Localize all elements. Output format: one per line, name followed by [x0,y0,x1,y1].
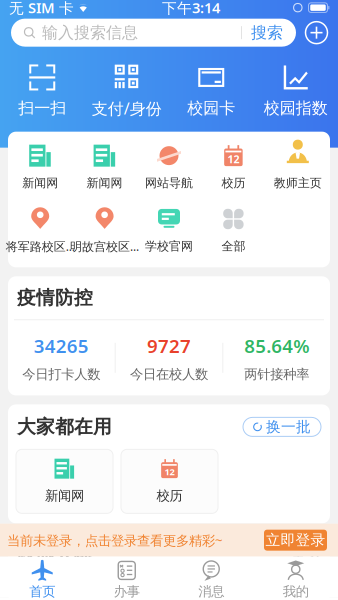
button[interactable]: 网站导航 [137,145,201,190]
button[interactable]: 学校官网 [137,208,201,254]
staticText: 当前未登录，点击登录查看更多精彩~ [7,531,223,549]
button[interactable]: 我的 [253,554,338,600]
button[interactable]: 支付/身份 [84,64,169,119]
staticText: 12 [164,465,174,478]
staticText: 学校官网 [145,239,193,254]
staticText: 校园指数 [264,98,328,118]
staticText: 搜索 [251,23,283,42]
button[interactable]: 输入搜索信息 [11,19,296,47]
staticText: 我的 [283,583,309,600]
staticText: 疫情防控 [17,286,93,309]
button[interactable]: 换一批 [243,417,321,436]
staticText: 大家都在用 [17,415,112,438]
staticText: 明故宫校区... [70,238,139,254]
staticText: 全部 [221,239,245,254]
staticText: 扫一扫 [18,98,66,118]
button[interactable]: 新闻网 [72,145,137,190]
staticText: 教师主页 [274,176,322,190]
staticText: 更多 [291,546,321,564]
button[interactable]: 12 [201,145,266,190]
staticText: 换一批 [266,418,311,436]
staticText: 网站导航 [145,176,193,190]
staticText: 支付/身份 [92,98,162,119]
button[interactable]: 12 [121,449,218,513]
button[interactable]: 新闻网 [16,449,113,513]
staticText: 12 [227,152,239,166]
button[interactable]: 办事 [84,554,169,600]
button[interactable]: 添加 [305,21,328,44]
staticText: 校历 [221,176,245,190]
staticText: 将军路校区... [6,238,75,254]
staticText: 首页 [29,583,55,600]
button[interactable]: 教师主页 [266,145,330,190]
staticText: 输入搜索信息 [42,23,138,42]
button[interactable]: 将军路校区... [8,207,72,254]
staticText: 新闻网 [45,488,84,504]
staticText: 9727 [147,333,191,358]
staticText: 85.64% [244,333,309,358]
staticText: 校园卡 [187,98,235,118]
staticText: 新闻网 [87,176,123,190]
button[interactable]: 校园指数 [253,64,338,118]
staticText: 新闻网 [22,176,58,190]
button[interactable]: 校园卡 [169,64,253,118]
button[interactable]: 消息 [169,554,253,600]
staticText: 两针接种率 [244,366,309,382]
staticText: 无 SIM 卡 [9,0,74,17]
button[interactable]: 首页 [0,554,84,600]
staticText: 校历 [156,488,182,504]
staticText: 消息 [198,583,224,600]
staticText: 下午3:14 [162,0,220,17]
button[interactable]: 新闻网 [8,145,72,190]
staticText: 办事 [114,583,140,600]
button[interactable]: 明故宫校区... [72,207,137,254]
staticText: 今日在校人数 [130,366,208,382]
button[interactable]: 扫一扫 [0,64,84,118]
button[interactable]: 立即登录 [264,530,327,551]
staticText: 今日打卡人数 [22,366,100,382]
staticText: 立即登录 [265,531,325,549]
button[interactable]: 全部 [201,208,266,254]
staticText: 校园云播 [17,543,93,566]
staticText: 34265 [34,333,89,358]
